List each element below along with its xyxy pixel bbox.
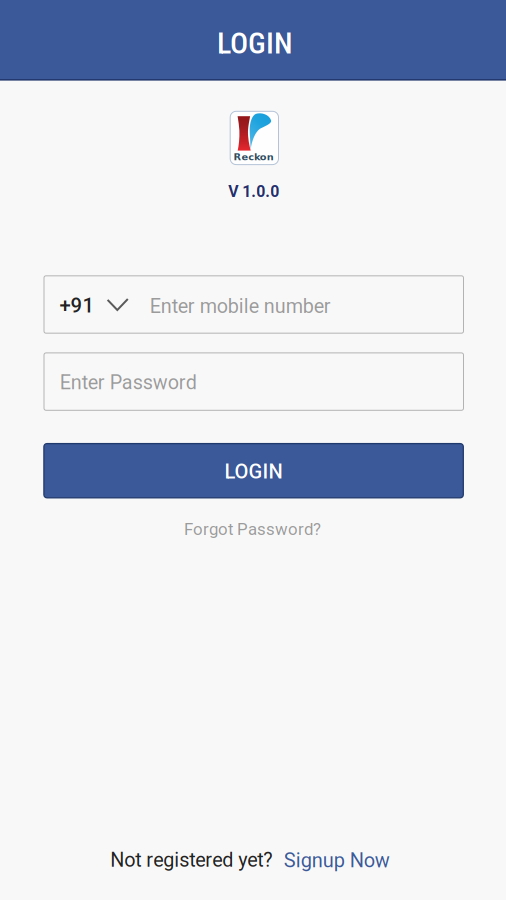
button[interactable]: Signup Now [277,844,397,876]
button[interactable]: Country calling code, +91 [44,276,136,334]
staticText: Forgot Password? [184,519,321,539]
button[interactable]: Forgot Password? [167,514,337,544]
staticText: Enter Password [60,371,197,394]
staticText: +91 [60,294,95,317]
staticText: V 1.0.0 [228,182,279,201]
staticText: Signup Now [284,849,390,872]
staticText: Reckon [233,153,268,162]
staticText: LOGIN [225,460,283,483]
button[interactable]: LOGIN [44,444,463,498]
staticText: Not registered yet? [110,848,272,871]
staticText: Enter mobile number [150,295,331,318]
button[interactable]: Enter mobile number [136,276,463,333]
button[interactable]: Enter Password [44,353,463,410]
staticText: LOGIN [217,25,293,61]
